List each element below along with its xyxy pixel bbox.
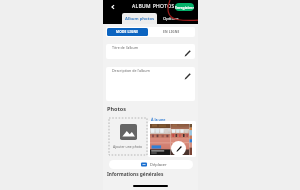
staticText: Titre de l'album: [112, 45, 139, 50]
button[interactable]: MODE LIGNE: [107, 28, 148, 36]
button[interactable]: Edit photos: [171, 141, 186, 156]
button[interactable]: Description de l'album: [106, 67, 195, 101]
button[interactable]: Edit photos: [150, 124, 192, 155]
button[interactable]: Déplacer: [109, 160, 193, 169]
button[interactable]: EN LIGNE: [148, 28, 194, 36]
staticText: Déplacer: [150, 162, 167, 167]
button[interactable]: Album photos: [122, 13, 157, 24]
button[interactable]: Titre de l'album: [106, 44, 195, 59]
staticText: Ajouter une photo: [113, 144, 143, 149]
staticText: Options: [163, 16, 179, 22]
staticText: MODE LIGNE: [116, 30, 139, 34]
button[interactable]: Enregistrer: [175, 3, 194, 11]
staticText: Enregistrer: [175, 5, 194, 10]
staticText: EN LIGNE: [163, 30, 180, 34]
staticText: Photos: [107, 105, 127, 112]
staticText: Informations générales: [107, 171, 164, 178]
staticText: ALBUM PHOTOS: [132, 3, 175, 10]
button[interactable]: Back: [107, 1, 118, 12]
button[interactable]: Ajouter une photo: [109, 118, 147, 155]
staticText: Album photos: [125, 16, 155, 22]
button[interactable]: Options: [158, 13, 184, 24]
staticText: À la une: [151, 117, 166, 122]
staticText: Description de l'album: [112, 68, 150, 73]
